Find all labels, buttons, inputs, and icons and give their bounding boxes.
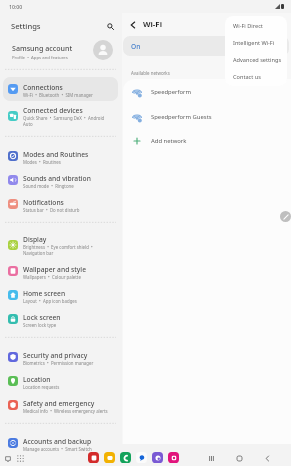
button[interactable]: Modes and Routines	[3, 144, 118, 168]
staticText: Notifications	[23, 198, 64, 207]
staticText: Wi-Fi • Bluetooth • SIM manager	[23, 92, 93, 98]
staticText: Add network	[151, 137, 187, 145]
button[interactable]: Back	[262, 453, 273, 464]
staticText: 10:00	[9, 3, 23, 10]
staticText: Wallpaper and style	[23, 265, 87, 274]
staticText: Status bar • Do not disturb	[23, 207, 80, 213]
button[interactable]: Advanced settings	[225, 51, 287, 68]
staticText: Advanced settings	[233, 56, 282, 64]
button[interactable]: Location	[3, 369, 118, 393]
staticText: Available networks	[131, 70, 170, 76]
staticText: Modes • Routines	[23, 159, 61, 165]
staticText: Medical info • Wireless emergency alerts	[23, 408, 108, 414]
button[interactable]: Display	[3, 230, 118, 259]
staticText: Speedperform	[151, 88, 192, 96]
staticText: Contact us	[233, 73, 261, 81]
button[interactable]: Resize panel	[280, 211, 291, 222]
staticText: Wi-Fi Direct	[233, 22, 263, 30]
staticText: Connections	[23, 83, 63, 92]
button[interactable]: Notifications	[3, 192, 118, 216]
button[interactable]: App	[136, 452, 147, 463]
staticText: Lock screen	[23, 313, 61, 322]
button[interactable]: Security and privacy	[3, 345, 118, 369]
button[interactable]: Connected devices	[3, 101, 118, 130]
staticText: Biometrics • Permission manager	[23, 360, 94, 366]
staticText: Connected devices	[23, 106, 83, 115]
button[interactable]: Intelligent Wi-Fi	[225, 34, 287, 51]
button[interactable]: App	[152, 452, 163, 463]
staticText: Safety and emergency	[23, 399, 95, 408]
staticText: Accounts and backup	[23, 437, 92, 446]
staticText: Home screen	[23, 289, 66, 298]
staticText: On	[131, 42, 141, 51]
staticText: Location requests	[23, 384, 60, 390]
staticText: Modes and Routines	[23, 150, 89, 159]
button[interactable]: Connections	[3, 77, 118, 101]
staticText: Intelligent Wi-Fi	[233, 39, 275, 47]
button[interactable]: All apps	[15, 453, 26, 464]
button[interactable]: Lock screen	[3, 307, 118, 331]
button[interactable]: Safety and emergency	[3, 393, 118, 417]
button[interactable]: Accounts and backup	[3, 431, 118, 455]
button[interactable]: On	[123, 36, 289, 56]
button[interactable]: Sounds and vibration	[3, 168, 118, 192]
staticText: Manage accounts • Smart Switch	[23, 446, 92, 452]
button[interactable]: Recent apps	[206, 453, 217, 464]
button[interactable]: Samsung account	[0, 39, 121, 63]
staticText: Quick Share • Samsung DeX • Android Auto	[23, 115, 114, 127]
button[interactable]: App	[120, 452, 131, 463]
button[interactable]: Wi-Fi Direct	[225, 17, 287, 34]
button[interactable]: Speedperform	[123, 79, 291, 104]
button[interactable]: Wallpaper and style	[3, 259, 118, 283]
staticText: Screen lock type	[23, 322, 57, 328]
button[interactable]: App	[104, 452, 115, 463]
staticText: Security and privacy	[23, 351, 88, 360]
staticText: Layout • App icon badges	[23, 298, 77, 304]
staticText: Sounds and vibration	[23, 174, 91, 183]
staticText: Sound mode • Ringtone	[23, 183, 74, 189]
button[interactable]: Search	[103, 19, 117, 33]
staticText: Speedperform Guests	[151, 113, 212, 121]
staticText: Settings	[11, 21, 41, 31]
staticText: Profile • Apps and features	[12, 54, 68, 60]
button[interactable]: App	[88, 452, 99, 463]
button[interactable]: Home screen	[3, 283, 118, 307]
button[interactable]: Speedperform Guests	[123, 104, 291, 129]
button[interactable]: Home	[234, 453, 245, 464]
staticText: Display	[23, 235, 47, 244]
button[interactable]: Back	[126, 18, 139, 31]
staticText: Wallpapers • Colour palette	[23, 274, 81, 280]
button[interactable]: App	[168, 452, 179, 463]
button[interactable]: Add network	[123, 129, 291, 153]
staticText: Wi-Fi	[143, 19, 162, 30]
button[interactable]: Notifications	[2, 453, 13, 464]
staticText: Location	[23, 375, 51, 384]
staticText: Samsung account	[12, 43, 73, 53]
button[interactable]: Contact us	[225, 68, 287, 85]
staticText: Brightness • Eye comfort shield • Naviga…	[23, 244, 114, 256]
